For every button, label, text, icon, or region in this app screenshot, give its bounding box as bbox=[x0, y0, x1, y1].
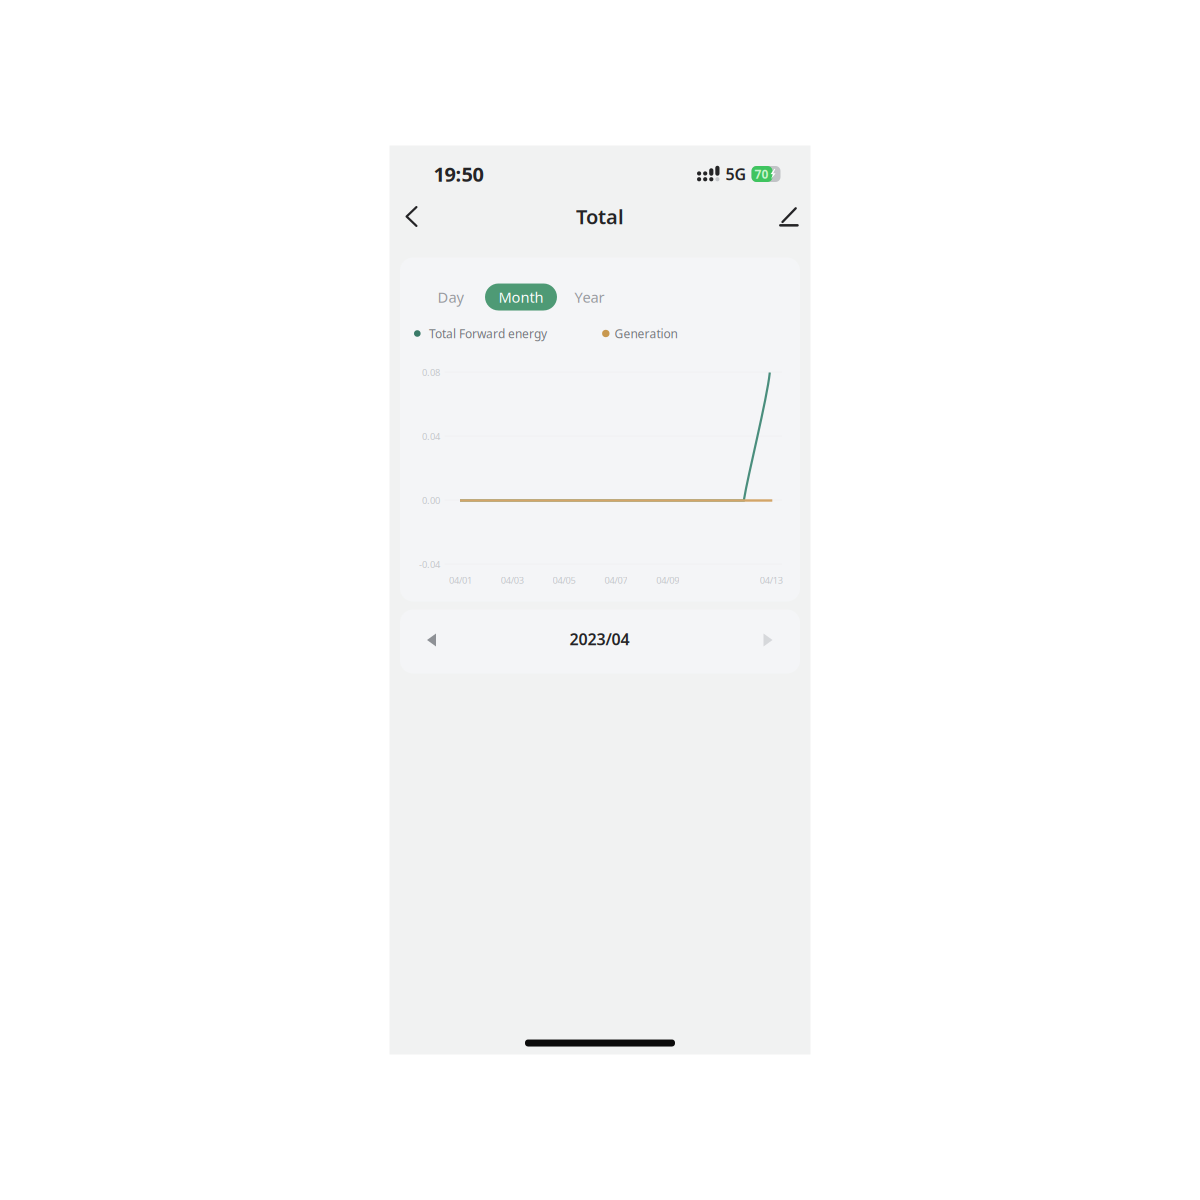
staticText: 0.00 bbox=[422, 494, 440, 507]
staticText: 04/03 bbox=[501, 574, 524, 586]
staticText: 2023/04 bbox=[569, 628, 629, 650]
staticText: -0.04 bbox=[419, 558, 440, 571]
button[interactable]: Previous month bbox=[409, 618, 453, 662]
staticText: Total bbox=[576, 203, 624, 230]
staticText: 04/05 bbox=[553, 574, 576, 586]
staticText: Generation bbox=[614, 325, 677, 341]
staticText: 70 bbox=[754, 166, 768, 182]
button[interactable]: Edit bbox=[766, 194, 810, 238]
button[interactable]: Day bbox=[416, 283, 485, 310]
staticText: Year bbox=[574, 287, 604, 307]
staticText: 0.04 bbox=[422, 430, 440, 443]
staticText: 04/07 bbox=[604, 574, 627, 586]
button[interactable]: 2023/04 bbox=[539, 619, 659, 659]
button[interactable]: Next month bbox=[746, 618, 790, 662]
staticText: 5G bbox=[725, 163, 746, 185]
staticText: 04/01 bbox=[449, 574, 472, 586]
button[interactable]: Back bbox=[389, 194, 433, 238]
staticText: 19:50 bbox=[433, 161, 483, 187]
button[interactable]: Month bbox=[485, 283, 557, 310]
staticText: 04/09 bbox=[656, 574, 679, 586]
button[interactable]: Year bbox=[557, 283, 622, 310]
staticText: Total Forward energy bbox=[429, 325, 547, 341]
staticText: 0.08 bbox=[422, 366, 440, 379]
staticText: Month bbox=[498, 287, 543, 307]
staticText: Day bbox=[437, 287, 463, 307]
staticText: 04/13 bbox=[760, 574, 783, 586]
